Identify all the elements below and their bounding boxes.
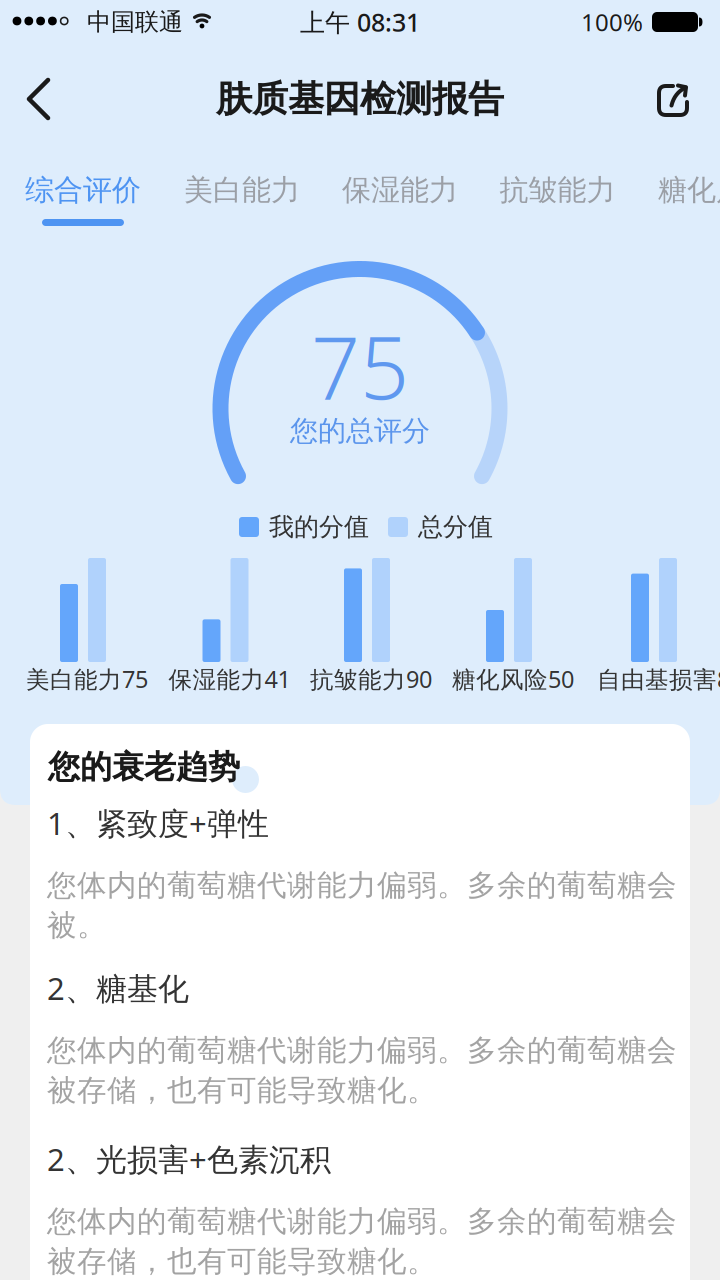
staticText: 您的衰老趋势 [48, 747, 240, 787]
staticText: 抗皱能力 [499, 172, 615, 208]
staticText: 中国联通 [87, 7, 183, 37]
button[interactable]: 保湿能力 [325, 164, 475, 216]
staticText: 您体内的葡萄糖代谢能力偏弱。多余的葡萄糖会 [47, 1203, 677, 1240]
staticText: 您体内的葡萄糖代谢能力偏弱。多余的葡萄糖会 [47, 867, 677, 904]
staticText: 总分值 [418, 511, 493, 543]
staticText: 2、光损害+色素沉积 [47, 1138, 331, 1180]
staticText: 糖化风险50 [452, 663, 574, 695]
staticText: 保湿能力 [342, 172, 458, 208]
staticText: 抗皱能力90 [310, 663, 432, 695]
staticText: 100% [581, 6, 643, 38]
staticText: 您的总评分 [290, 413, 430, 449]
staticText: 综合评价 [25, 172, 141, 208]
staticText: 美白能力75 [26, 663, 148, 695]
staticText: 被存储，也有可能导致糖化。 [47, 1243, 437, 1280]
staticText: 美白能力 [184, 172, 300, 208]
staticText: 2、糖基化 [47, 967, 189, 1009]
button[interactable]: 美白能力 [167, 164, 317, 216]
staticText: 被存储，也有可能导致糖化。 [47, 1072, 437, 1109]
button[interactable]: Share [645, 72, 701, 128]
staticText: 75 [311, 307, 409, 424]
button[interactable]: 抗皱能力 [482, 164, 632, 216]
staticText: 糖化风险 [658, 172, 720, 208]
button[interactable]: 糖化风险 [641, 164, 720, 216]
button[interactable]: Back [17, 68, 79, 130]
staticText: 自由基损害85 [597, 663, 720, 695]
staticText: 上午 08:31 [300, 5, 420, 39]
staticText: 我的分值 [269, 511, 369, 543]
staticText: 保湿能力41 [168, 663, 290, 695]
staticText: 您体内的葡萄糖代谢能力偏弱。多余的葡萄糖会 [47, 1032, 677, 1069]
staticText: 肤质基因检测报告 [216, 76, 504, 122]
button[interactable]: 综合评价 [8, 164, 158, 216]
staticText: 被。 [47, 907, 107, 944]
staticText: 1、紧致度+弹性 [47, 802, 269, 844]
